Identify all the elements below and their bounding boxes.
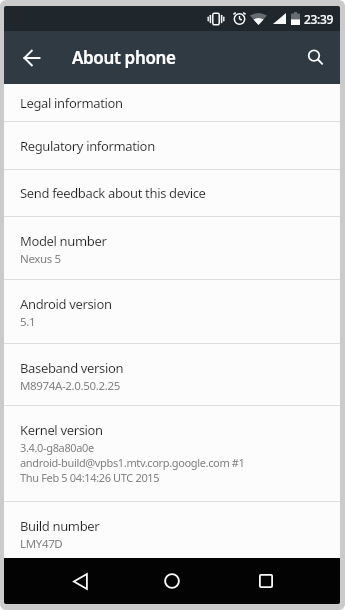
button[interactable]: Baseband version <box>4 344 340 405</box>
button[interactable]: Send feedback about this device <box>4 170 340 216</box>
staticText: Model number <box>20 232 107 250</box>
staticText: 23:39 <box>304 11 333 27</box>
staticText: 3.4.0-g8a80a0e <box>20 440 94 455</box>
button[interactable]: Kernel version <box>4 406 340 501</box>
button[interactable]: Legal information <box>4 84 340 121</box>
staticText: 5.1 <box>20 314 36 330</box>
staticText: LMY47D <box>20 536 63 552</box>
button[interactable] <box>290 31 340 84</box>
button[interactable]: Android version <box>4 280 340 343</box>
button[interactable]: Regulatory information <box>4 122 340 169</box>
button[interactable]: Build number <box>4 502 340 558</box>
staticText: Legal information <box>20 94 123 112</box>
staticText: Build number <box>20 517 100 535</box>
staticText: Baseband version <box>20 359 124 377</box>
staticText: Kernel version <box>20 421 103 439</box>
staticText: Thu Feb 5 04:14:26 UTC 2015 <box>20 470 160 485</box>
staticText: android-build@vpbs1.mtv.corp.google.com … <box>20 455 245 470</box>
button[interactable] <box>144 558 200 604</box>
button[interactable] <box>4 31 60 84</box>
staticText: Nexus 5 <box>20 251 61 267</box>
staticText: Send feedback about this device <box>20 184 206 202</box>
staticText: M8974A-2.0.50.2.25 <box>20 378 120 394</box>
staticText: About phone <box>72 46 176 69</box>
staticText: Regulatory information <box>20 137 155 155</box>
button[interactable] <box>238 558 294 604</box>
button[interactable] <box>52 558 108 604</box>
staticText: Android version <box>20 295 112 313</box>
button[interactable]: Model number <box>4 217 340 279</box>
